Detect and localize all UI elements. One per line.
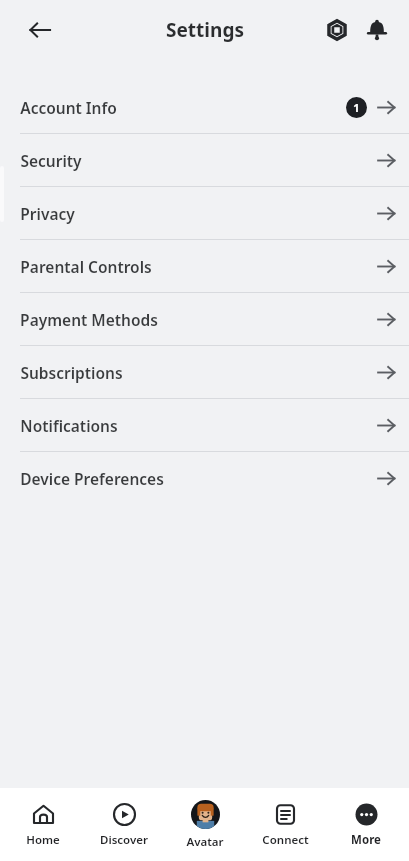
staticText: Home (26, 832, 60, 848)
staticText: 1 (353, 100, 360, 115)
button[interactable]: Notifications (357, 10, 397, 50)
button[interactable]: Payment Methods (0, 293, 409, 346)
button[interactable]: Device Preferences (0, 452, 409, 505)
button[interactable]: Discover (86, 802, 162, 848)
button[interactable]: Robux balance (317, 10, 357, 50)
staticText: Security (20, 150, 82, 171)
staticText: Avatar (186, 834, 224, 850)
staticText: More (351, 832, 381, 848)
staticText: Account Info (20, 97, 117, 118)
button[interactable]: Parental Controls (0, 240, 409, 293)
staticText: Privacy (20, 203, 75, 224)
button[interactable]: Account Info (0, 81, 409, 134)
staticText: Subscriptions (20, 362, 123, 383)
staticText: Parental Controls (20, 256, 152, 277)
button[interactable]: Avatar (167, 800, 243, 850)
button[interactable]: Home (5, 802, 81, 848)
staticText: Discover (100, 832, 148, 848)
button[interactable]: Back (18, 8, 62, 52)
button[interactable]: Privacy (0, 187, 409, 240)
staticText: Notifications (20, 415, 118, 436)
staticText: Connect (262, 832, 309, 848)
button[interactable]: Notifications (0, 399, 409, 452)
button[interactable]: More (328, 802, 404, 848)
button[interactable]: Connect (247, 802, 323, 848)
staticText: Settings (166, 17, 244, 43)
button[interactable]: Subscriptions (0, 346, 409, 399)
staticText: Payment Methods (20, 309, 158, 330)
staticText: Device Preferences (20, 468, 164, 489)
button[interactable]: Security (0, 134, 409, 187)
